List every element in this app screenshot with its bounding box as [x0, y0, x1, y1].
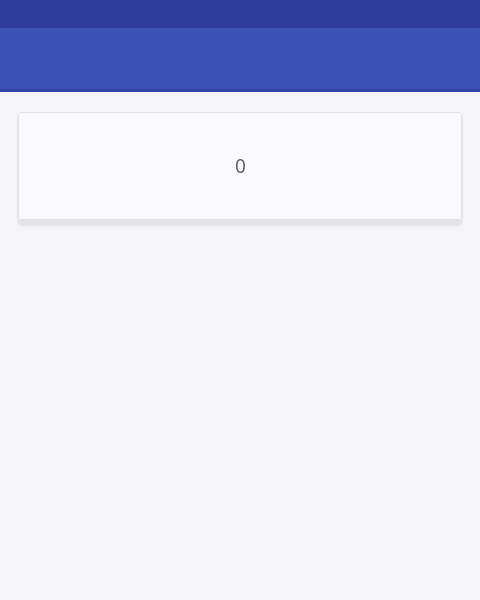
- button[interactable]: 0: [18, 112, 462, 220]
- staticText: 0: [235, 153, 246, 179]
